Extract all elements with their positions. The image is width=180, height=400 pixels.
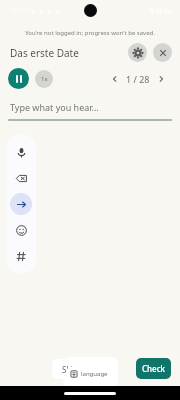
button[interactable]: Enter <box>10 193 32 215</box>
staticText: Skip <box>62 364 78 375</box>
button[interactable]: 1x <box>35 70 53 88</box>
staticText: 1x <box>41 75 48 83</box>
button[interactable]: language <box>66 368 112 380</box>
button[interactable]: Skip <box>52 359 88 379</box>
staticText: Check <box>142 363 166 374</box>
button[interactable]: Next <box>154 72 168 86</box>
button[interactable]: Check <box>136 358 171 379</box>
button[interactable]: Symbols <box>10 245 32 267</box>
staticText: Das erste Date <box>10 46 79 60</box>
button[interactable]: Close <box>153 43 172 62</box>
button[interactable]: Type what you hear... <box>8 101 172 121</box>
button[interactable]: Backspace <box>10 167 32 189</box>
staticText: 1 / 28 <box>126 73 150 85</box>
staticText: language <box>81 370 108 378</box>
staticText: Type what you hear... <box>10 101 99 113</box>
button[interactable]: Settings <box>128 43 147 62</box>
button[interactable]: Previous <box>108 72 122 86</box>
button[interactable]: Pause <box>8 68 29 89</box>
button[interactable]: Emoji <box>10 219 32 241</box>
button[interactable]: Voice input <box>10 141 32 163</box>
staticText: You're not logged in; progress won't be … <box>0 29 180 37</box>
